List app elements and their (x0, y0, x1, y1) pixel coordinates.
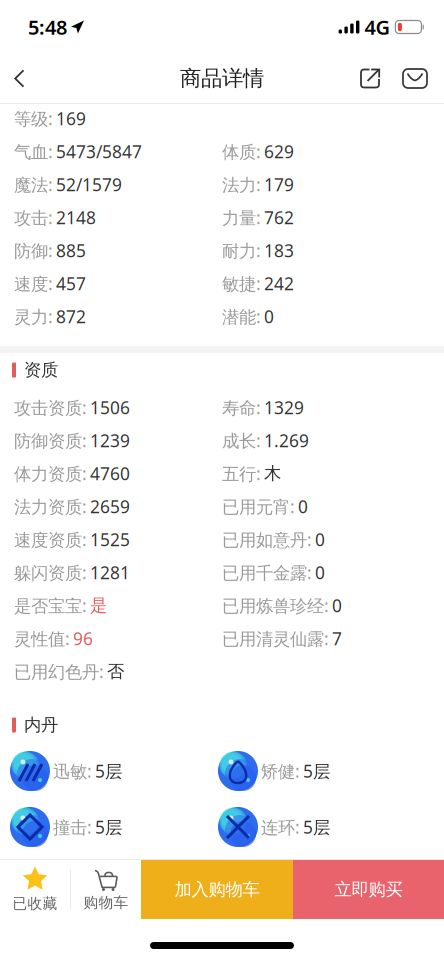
staticText: 0 (264, 305, 274, 328)
staticText: 体质: (222, 140, 261, 163)
staticText: 防御: (14, 239, 53, 262)
staticText: 1281 (90, 561, 130, 584)
staticText: 寿命: (222, 396, 261, 419)
staticText: 等级: (14, 107, 53, 130)
staticText: 1239 (90, 429, 130, 452)
staticText: 成长: (222, 429, 261, 452)
staticText: 5层 (303, 759, 330, 782)
staticText: 法力资质: (14, 495, 87, 518)
staticText: 否 (107, 661, 124, 682)
staticText: 已用炼兽珍经: (222, 594, 329, 617)
staticText: 速度资质: (14, 528, 87, 551)
staticText: 体力资质: (14, 462, 87, 485)
button[interactable]: 已收藏 (0, 860, 70, 919)
staticText: 5层 (95, 815, 122, 838)
button[interactable]: Share (350, 56, 390, 100)
staticText: 5473/5847 (56, 140, 142, 163)
staticText: 已用千金露: (222, 561, 312, 584)
staticText: 已用元宵: (222, 495, 295, 518)
staticText: 法力: (222, 173, 261, 196)
staticText: 气血: (14, 140, 53, 163)
staticText: 885 (56, 239, 86, 262)
staticText: 52/1579 (56, 173, 122, 196)
staticText: 已用幻色丹: (14, 660, 104, 683)
staticText: 木 (264, 463, 281, 484)
staticText: 防御资质: (14, 429, 87, 452)
staticText: 五行: (222, 462, 261, 485)
staticText: 资质 (24, 359, 58, 381)
staticText: 迅敏: (53, 759, 92, 782)
button[interactable]: Messages (390, 56, 444, 100)
button[interactable]: Back (0, 56, 39, 100)
staticText: 灵力: (14, 305, 53, 328)
staticText: 敏捷: (222, 272, 261, 295)
staticText: 2659 (90, 495, 130, 518)
staticText: 攻击: (14, 206, 53, 229)
staticText: 183 (264, 239, 294, 262)
staticText: 内丹 (24, 714, 58, 736)
staticText: 242 (264, 272, 294, 295)
staticText: 5层 (303, 815, 330, 838)
staticText: 5:48 (28, 14, 67, 40)
staticText: 力量: (222, 206, 261, 229)
staticText: 169 (56, 107, 86, 130)
staticText: 4760 (90, 462, 130, 485)
staticText: 0 (332, 594, 342, 617)
staticText: 连环: (261, 815, 300, 838)
button[interactable]: 加入购物车 (141, 860, 293, 919)
staticText: 矫健: (261, 759, 300, 782)
staticText: 攻击资质: (14, 396, 87, 419)
staticText: 撞击: (53, 815, 92, 838)
staticText: 灵性值: (14, 627, 70, 650)
staticText: 4G (364, 14, 390, 40)
staticText: 商品详情 (180, 65, 264, 92)
staticText: 潜能: (222, 305, 261, 328)
button[interactable]: 购物车 (71, 860, 141, 919)
staticText: 购物车 (83, 893, 128, 911)
staticText: 0 (315, 528, 325, 551)
staticText: 耐力: (222, 239, 261, 262)
staticText: 762 (264, 206, 294, 229)
staticText: 已用清灵仙露: (222, 627, 329, 650)
staticText: 魔法: (14, 173, 53, 196)
staticText: 速度: (14, 272, 53, 295)
staticText: 躲闪资质: (14, 561, 87, 584)
staticText: 已用如意丹: (222, 528, 312, 551)
staticText: 1506 (90, 396, 130, 419)
staticText: 629 (264, 140, 294, 163)
staticText: 457 (56, 272, 86, 295)
staticText: 1.269 (264, 429, 309, 452)
staticText: 5层 (95, 759, 122, 782)
staticText: 0 (298, 495, 308, 518)
staticText: 96 (73, 627, 93, 650)
staticText: 872 (56, 305, 86, 328)
staticText: 2148 (56, 206, 96, 229)
staticText: 179 (264, 173, 294, 196)
staticText: 0 (315, 561, 325, 584)
staticText: 立即购买 (334, 879, 402, 900)
staticText: 加入购物车 (174, 879, 259, 900)
staticText: 是否宝宝: (14, 594, 87, 617)
button[interactable]: 立即购买 (293, 860, 444, 919)
staticText: 1329 (264, 396, 304, 419)
staticText: 是 (90, 595, 107, 616)
staticText: 已收藏 (12, 894, 57, 912)
staticText: 1525 (90, 528, 130, 551)
staticText: 7 (332, 627, 342, 650)
